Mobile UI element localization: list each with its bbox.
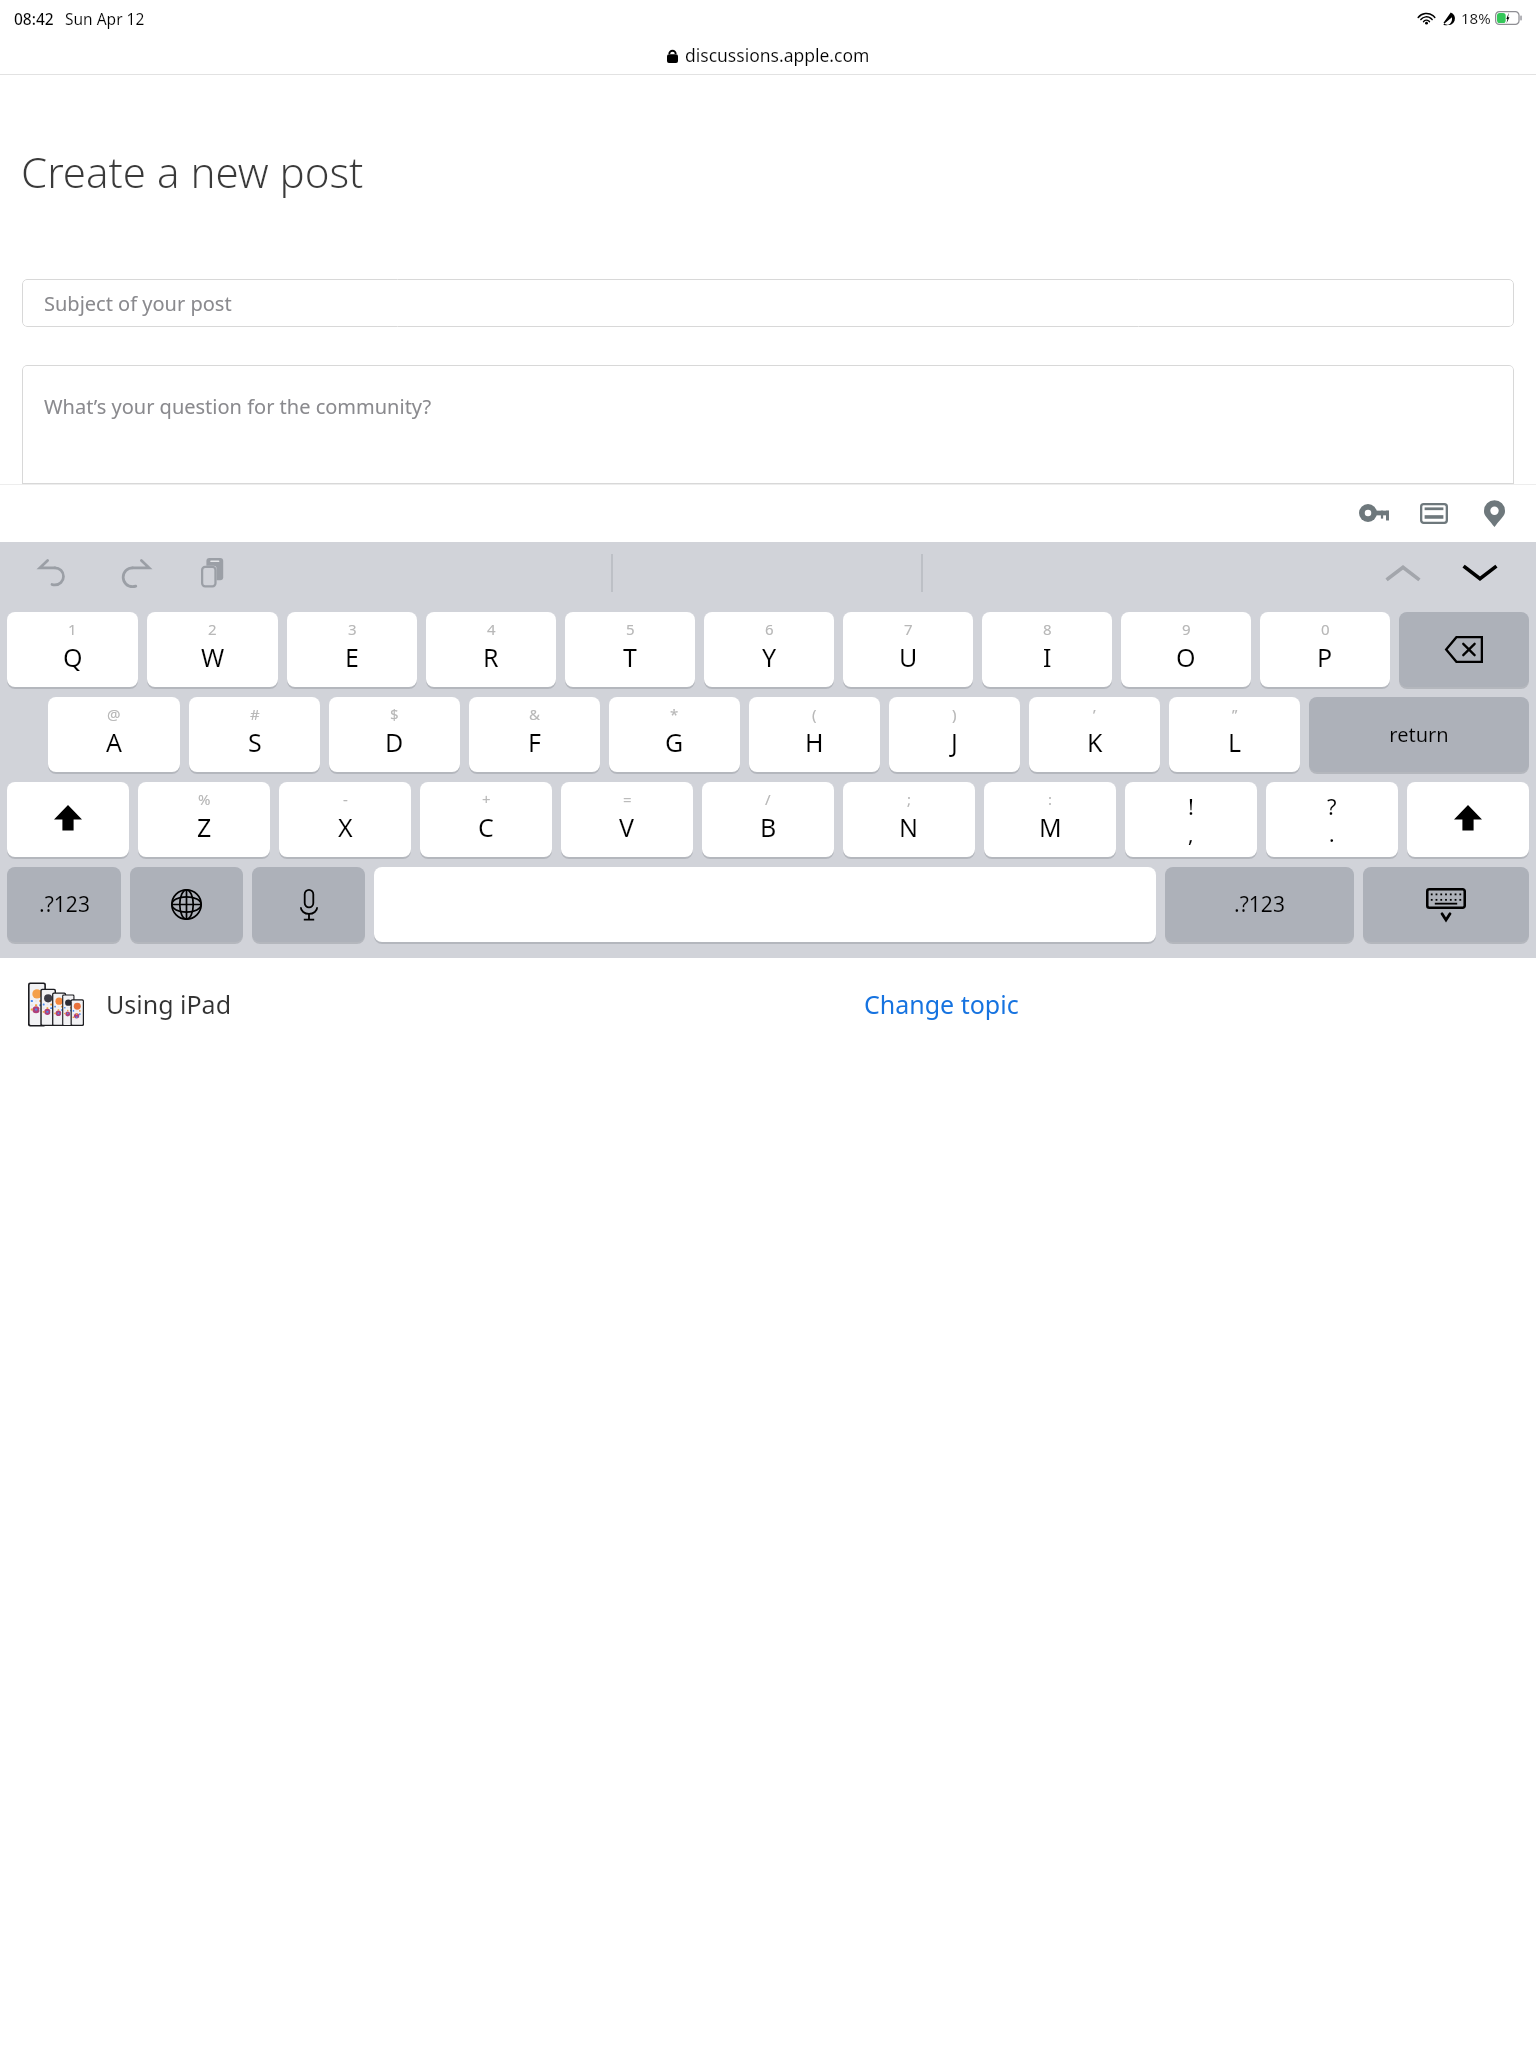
staticText: = <box>623 789 632 809</box>
staticText: 3 <box>348 619 357 639</box>
staticText: What’s your question for the community? <box>44 393 432 420</box>
button[interactable]: 1 <box>7 612 138 687</box>
button[interactable]: 9 <box>1121 612 1251 687</box>
button[interactable]: ) <box>889 697 1020 772</box>
staticText: B <box>760 810 777 844</box>
button[interactable]: 5 <box>565 612 695 687</box>
staticText: .?123 <box>39 890 90 919</box>
button[interactable]: = <box>561 782 693 857</box>
staticText: Create a new post <box>21 143 364 200</box>
staticText: J <box>951 725 958 759</box>
staticText: - <box>343 789 348 809</box>
button[interactable]: Hide keyboard <box>1363 867 1529 942</box>
button[interactable]: Shift <box>1407 782 1529 857</box>
button[interactable]: Location <box>1472 491 1516 535</box>
staticText: G <box>665 725 684 759</box>
staticText: R <box>483 640 499 674</box>
staticText: F <box>528 725 541 759</box>
button[interactable]: : <box>984 782 1116 857</box>
button[interactable]: % <box>138 782 270 857</box>
staticText: ? <box>1327 791 1337 821</box>
button[interactable]: Next field <box>1454 547 1506 599</box>
staticText: C <box>478 810 494 844</box>
staticText: K <box>1087 725 1103 759</box>
button[interactable]: 8 <box>982 612 1112 687</box>
staticText: Q <box>63 640 83 674</box>
button[interactable]: ( <box>749 697 880 772</box>
button[interactable]: @ <box>48 697 180 772</box>
staticText: E <box>345 640 359 674</box>
button[interactable]: Redo <box>111 549 159 597</box>
staticText: I <box>1043 640 1052 674</box>
button[interactable]: Change topic <box>856 979 1027 1029</box>
button[interactable]: Shift <box>7 782 129 857</box>
button[interactable]: 3 <box>287 612 417 687</box>
button[interactable]: + <box>420 782 552 857</box>
staticText: .?123 <box>1234 890 1285 919</box>
staticText: 6 <box>765 619 774 639</box>
staticText: return <box>1389 721 1449 748</box>
button[interactable]: 7 <box>843 612 973 687</box>
staticText: Sun Apr 12 <box>65 8 145 29</box>
button[interactable]: ; <box>843 782 975 857</box>
staticText: & <box>529 704 540 724</box>
staticText: , <box>1188 821 1194 848</box>
button[interactable]: 2 <box>147 612 278 687</box>
staticText: L <box>1228 725 1242 759</box>
button[interactable]: .?123 <box>7 867 121 942</box>
staticText: + <box>482 789 491 809</box>
button[interactable]: / <box>702 782 834 857</box>
staticText: ” <box>1232 704 1238 724</box>
button[interactable]: 4 <box>426 612 556 687</box>
staticText: 0 <box>1321 619 1330 639</box>
button[interactable]: What’s your question for the community? <box>22 365 1514 484</box>
staticText: Using iPad <box>106 987 232 1021</box>
button[interactable]: .?123 <box>1165 867 1354 942</box>
button[interactable]: ! <box>1125 782 1257 857</box>
staticText: ; <box>907 789 912 809</box>
button[interactable]: Paste <box>189 549 237 597</box>
button[interactable]: # <box>189 697 320 772</box>
staticText: ’ <box>1093 704 1096 724</box>
staticText: 1 <box>68 619 77 639</box>
staticText: T <box>623 640 637 674</box>
button[interactable]: Subject of your post <box>22 279 1514 327</box>
button[interactable]: Using iPad <box>28 980 232 1028</box>
staticText: % <box>198 789 211 809</box>
staticText: V <box>619 810 635 844</box>
staticText: ) <box>952 704 957 724</box>
button[interactable]: Backspace <box>1399 612 1529 687</box>
staticText: 4 <box>487 619 496 639</box>
button[interactable]: return <box>1309 697 1529 772</box>
staticText: Subject of your post <box>44 290 232 317</box>
button[interactable]: - <box>279 782 411 857</box>
staticText: Z <box>197 810 212 844</box>
staticText: X <box>338 810 353 844</box>
button[interactable]: Undo <box>30 549 78 597</box>
staticText: discussions.apple.com <box>685 43 870 67</box>
staticText: 7 <box>904 619 913 639</box>
button[interactable]: Switch keyboard <box>130 867 243 942</box>
staticText: @ <box>107 704 121 724</box>
button[interactable]: Credit cards <box>1412 491 1456 535</box>
staticText: # <box>250 704 260 724</box>
button[interactable]: Dictate <box>252 867 365 942</box>
button[interactable]: * <box>609 697 740 772</box>
button[interactable]: ? <box>1266 782 1398 857</box>
button[interactable]: ’ <box>1029 697 1160 772</box>
staticText: Y <box>762 640 777 674</box>
button[interactable]: ” <box>1169 697 1300 772</box>
button[interactable]: Passwords <box>1352 491 1396 535</box>
staticText: . <box>1329 821 1335 848</box>
staticText: 9 <box>1182 619 1191 639</box>
staticText: 18% <box>1461 8 1491 28</box>
staticText: ! <box>1188 791 1194 821</box>
staticText: P <box>1317 640 1333 674</box>
staticText: A <box>106 725 122 759</box>
button[interactable]: 6 <box>704 612 834 687</box>
button[interactable]: 0 <box>1260 612 1390 687</box>
button[interactable]: Previous field <box>1377 547 1429 599</box>
button[interactable]: & <box>469 697 600 772</box>
button[interactable]: $ <box>329 697 460 772</box>
